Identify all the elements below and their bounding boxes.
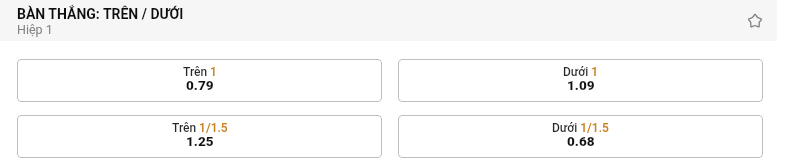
staticText: Trên 1: [183, 65, 217, 79]
button[interactable]: Trên 1/1.5: [17, 115, 382, 158]
staticText: 1.09: [567, 77, 595, 93]
button[interactable]: Trên 1: [17, 59, 382, 102]
staticText: 1.25: [186, 133, 214, 149]
staticText: Trên 1/1.5: [172, 121, 228, 135]
staticText: Dưới 1/1.5: [552, 121, 609, 135]
button[interactable]: Add to favourites: [740, 6, 770, 36]
staticText: 0.79: [186, 77, 214, 93]
button[interactable]: Dưới 1: [398, 59, 763, 102]
staticText: 0.68: [567, 133, 595, 149]
staticText: Dưới 1: [563, 65, 599, 79]
staticText: BÀN THẮNG: TRÊN / DƯỚI: [17, 6, 184, 22]
staticText: Hiệp 1: [17, 22, 53, 37]
button[interactable]: Dưới 1/1.5: [398, 115, 763, 158]
